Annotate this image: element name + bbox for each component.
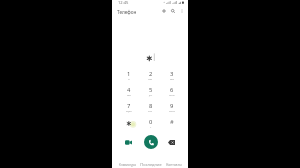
button[interactable]: 4 [118, 86, 140, 102]
staticText: DEF [170, 78, 174, 81]
staticText: 8 [149, 102, 153, 110]
button[interactable]: 1 [118, 70, 140, 86]
staticText: 6 [170, 86, 174, 94]
staticText: 3 [170, 70, 174, 78]
staticText: # [170, 118, 174, 126]
staticText: 12:45 [118, 0, 129, 6]
button[interactable]: 2 [140, 70, 161, 86]
button[interactable]: Search [168, 6, 177, 15]
staticText: 5 [149, 86, 153, 94]
button[interactable]: Контакты [162, 160, 185, 167]
button[interactable]: 6 [161, 86, 182, 102]
staticText: PQRS [126, 110, 132, 113]
staticText: 1 [127, 70, 131, 78]
staticText: 9 [170, 102, 174, 110]
button[interactable]: More options [177, 6, 186, 15]
button[interactable]: 9 [161, 102, 182, 118]
staticText: ∞ [128, 78, 130, 81]
staticText: Последние [140, 162, 162, 167]
staticText: MNO [169, 94, 175, 97]
staticText: 0 [149, 118, 153, 126]
button[interactable]: # [161, 118, 182, 134]
staticText: GHI [127, 94, 131, 97]
staticText: ABC [148, 78, 153, 81]
button[interactable]: 8 [140, 102, 161, 118]
staticText: Контакты [166, 162, 182, 167]
button[interactable]: 0 [140, 118, 161, 134]
staticText: 7 [127, 102, 131, 110]
button[interactable]: Call [140, 132, 161, 152]
button[interactable]: Последние [139, 160, 162, 167]
button[interactable]: 3 [161, 70, 182, 86]
staticText: WXYZ [169, 110, 175, 113]
button[interactable]: Клавиатура [115, 160, 139, 167]
staticText: TUV [148, 110, 153, 113]
button[interactable]: Backspace [161, 132, 182, 152]
staticText: + [150, 126, 152, 129]
staticText: Клавиатура [119, 163, 136, 167]
staticText: 4 [127, 86, 131, 94]
staticText: Телефон [117, 9, 137, 15]
staticText: JKL [149, 94, 153, 97]
button[interactable]: 7 [118, 102, 140, 118]
button[interactable]: Add contact [159, 6, 168, 15]
button[interactable] [118, 118, 140, 134]
button[interactable]: Video call [118, 132, 140, 152]
button[interactable]: 5 [140, 86, 161, 102]
staticText: 2 [149, 70, 153, 78]
